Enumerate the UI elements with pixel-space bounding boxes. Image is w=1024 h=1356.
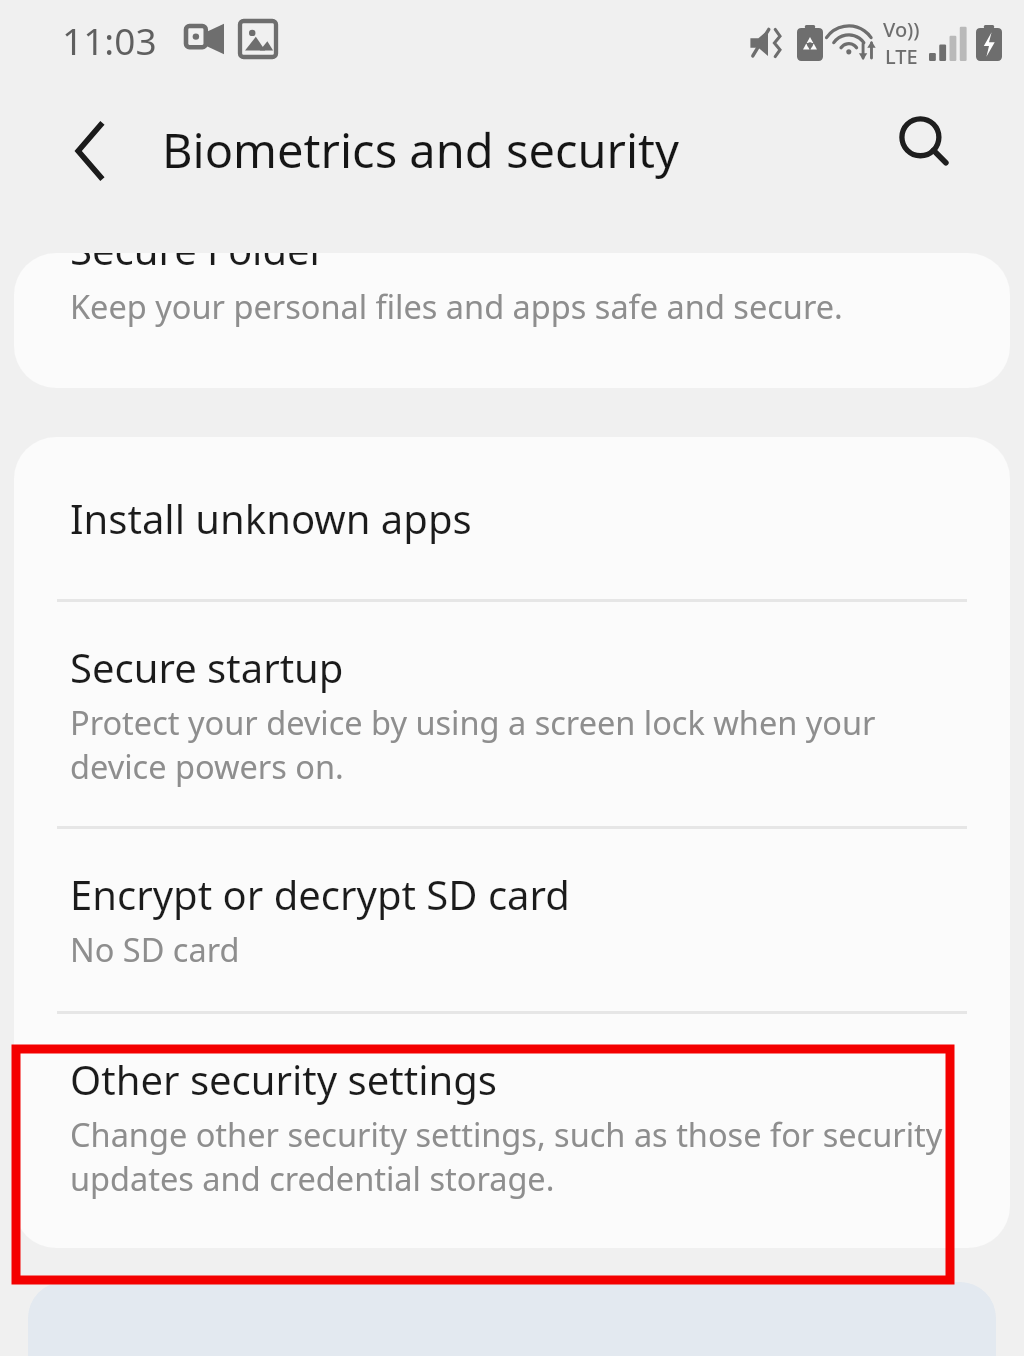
staticText: Protect your device by using a screen lo… bbox=[70, 700, 966, 788]
staticText: Encrypt or decrypt SD card bbox=[70, 867, 570, 921]
staticText: Biometrics and security bbox=[162, 118, 679, 182]
staticText: Keep your personal files and apps safe a… bbox=[70, 284, 843, 328]
staticText: Vo)) bbox=[883, 16, 920, 43]
button[interactable] bbox=[28, 1282, 996, 1356]
staticText: Install unknown apps bbox=[70, 491, 472, 545]
button[interactable]: Secure Folder bbox=[14, 253, 1010, 388]
button[interactable]: Other security settings bbox=[14, 1014, 1010, 1248]
button[interactable]: Secure startup bbox=[14, 602, 1010, 826]
staticText: LTE bbox=[885, 43, 918, 70]
staticText: Secure startup bbox=[70, 640, 344, 694]
staticText: Secure Folder bbox=[70, 253, 327, 276]
staticText: 11:03 bbox=[62, 15, 157, 65]
staticText: Change other security settings, such as … bbox=[70, 1112, 966, 1200]
button[interactable]: Navigate up bbox=[46, 106, 136, 196]
button[interactable]: Install unknown apps bbox=[14, 437, 1010, 599]
staticText: Other security settings bbox=[70, 1052, 497, 1106]
button[interactable]: Encrypt or decrypt SD card bbox=[14, 829, 1010, 1011]
staticText: No SD card bbox=[70, 927, 240, 971]
button[interactable]: Search bbox=[880, 98, 972, 190]
